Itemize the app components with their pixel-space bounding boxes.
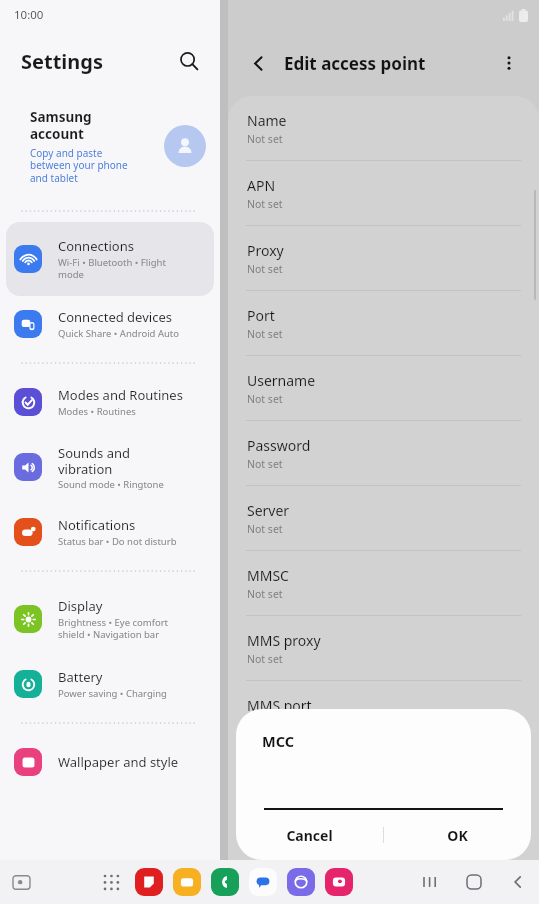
button[interactable]: Connected devices <box>6 296 214 352</box>
staticText: Modes • Routines <box>58 405 136 418</box>
staticText: Brightness • Eye comfort shield • Naviga… <box>58 616 169 641</box>
staticText: Edit access point <box>284 52 426 75</box>
staticText: OK <box>447 826 468 845</box>
button[interactable]: Display <box>6 582 214 656</box>
staticText: Port <box>247 306 275 325</box>
button[interactable]: MMSC <box>228 551 539 615</box>
button[interactable]: Proxy <box>228 226 539 290</box>
staticText: Battery <box>58 668 103 686</box>
staticText: APN <box>247 176 276 195</box>
button[interactable]: Connections <box>6 222 214 296</box>
button[interactable]: Cancel <box>236 810 383 860</box>
button[interactable]: Notifications <box>6 504 214 560</box>
staticText: Settings <box>21 48 103 75</box>
staticText: Sounds and vibration <box>58 444 130 477</box>
staticText: Samsung account <box>30 108 92 143</box>
button[interactable]: My Files <box>170 865 204 899</box>
staticText: Modes and Routines <box>58 386 183 404</box>
staticText: Server <box>247 501 290 520</box>
button[interactable]: More options <box>493 47 525 79</box>
staticText: Sound mode • Ringtone <box>58 478 164 491</box>
button[interactable]: Messages <box>246 865 280 899</box>
staticText: Notifications <box>58 516 136 534</box>
button[interactable]: Search <box>172 44 206 78</box>
button[interactable]: Username <box>228 356 539 420</box>
staticText: Connected devices <box>58 308 172 326</box>
button[interactable]: Notes <box>132 865 166 899</box>
button[interactable]: Recent apps panel <box>4 865 38 899</box>
staticText: Not set <box>247 457 283 471</box>
staticText: Cancel <box>286 826 333 845</box>
staticText: Quick Share • Android Auto <box>58 327 180 340</box>
staticText: 10:00 <box>14 7 44 23</box>
staticText: Not set <box>247 327 283 341</box>
button[interactable]: Sounds and vibration <box>6 430 214 504</box>
button[interactable]: Recents <box>413 865 447 899</box>
staticText: Not set <box>247 197 283 211</box>
button[interactable]: Wallpaper and style <box>6 734 214 790</box>
staticText: Copy and paste between your phone and ta… <box>30 146 128 185</box>
staticText: MMS proxy <box>247 631 321 650</box>
staticText: Display <box>58 597 103 615</box>
staticText: MMSC <box>247 566 289 585</box>
button[interactable]: Modes and Routines <box>6 374 214 430</box>
staticText: Not set <box>247 132 283 146</box>
button[interactable]: Password <box>228 421 539 485</box>
staticText: Status bar • Do not disturb <box>58 535 177 548</box>
staticText: Connections <box>58 237 134 255</box>
staticText: Not set <box>247 587 283 601</box>
button[interactable]: Samsung account <box>0 92 220 200</box>
staticText: Password <box>247 436 311 455</box>
staticText: Name <box>247 111 287 130</box>
button[interactable]: Gallery <box>322 865 356 899</box>
staticText: Username <box>247 371 316 390</box>
button[interactable]: Battery <box>6 656 214 712</box>
button[interactable]: Back <box>242 47 274 79</box>
staticText: Not set <box>247 522 283 536</box>
button[interactable]: Port <box>228 291 539 355</box>
staticText: Wallpaper and style <box>58 753 179 771</box>
staticText: Power saving • Charging <box>58 687 167 700</box>
button[interactable]: APN <box>228 161 539 225</box>
staticText: Proxy <box>247 241 284 260</box>
button[interactable]: OK <box>384 810 531 860</box>
staticText: Not set <box>247 652 283 666</box>
staticText: Wi-Fi • Bluetooth • Flight mode <box>58 256 166 281</box>
button[interactable]: Server <box>228 486 539 550</box>
staticText: MMS port <box>247 696 312 715</box>
button[interactable]: Internet <box>284 865 318 899</box>
staticText: Not set <box>247 262 283 276</box>
button[interactable]: MMS proxy <box>228 616 539 680</box>
button[interactable]: MMS port <box>228 681 539 745</box>
staticText: MCC <box>262 731 295 751</box>
button[interactable]: Name <box>228 96 539 160</box>
button[interactable]: Back <box>501 865 535 899</box>
button[interactable]: Home <box>457 865 491 899</box>
button[interactable]: Apps <box>94 865 128 899</box>
button[interactable]: Phone <box>208 865 242 899</box>
staticText: Not set <box>247 392 283 406</box>
